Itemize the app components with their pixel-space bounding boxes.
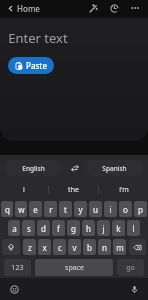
button[interactable]: History — [106, 0, 122, 16]
button[interactable]: Spanish — [87, 160, 142, 176]
staticText: i — [23, 185, 25, 195]
staticText: e — [33, 204, 38, 215]
button[interactable]: i — [0, 181, 48, 198]
staticText: a — [12, 223, 17, 234]
staticText: s — [27, 223, 31, 234]
staticText: go — [126, 263, 135, 273]
button[interactable]: Backspace — [129, 239, 146, 255]
button[interactable]: y — [74, 201, 87, 217]
staticText: p — [138, 204, 143, 215]
button[interactable]: More options — [127, 0, 143, 16]
staticText: Enter text — [8, 29, 68, 47]
button[interactable]: 123 — [4, 259, 31, 276]
button[interactable]: l — [127, 220, 140, 236]
button[interactable]: z — [23, 239, 36, 255]
staticText: f — [57, 223, 60, 234]
button[interactable]: s — [22, 220, 35, 236]
staticText: English — [22, 164, 45, 173]
button[interactable]: b — [83, 239, 96, 255]
staticText: v — [72, 242, 77, 253]
button[interactable]: v — [68, 239, 81, 255]
button[interactable]: a — [8, 220, 20, 236]
staticText: Home — [17, 3, 40, 14]
button[interactable]: u — [89, 201, 102, 217]
button[interactable]: w — [15, 201, 27, 217]
button[interactable]: t — [59, 201, 72, 217]
button[interactable]: q — [1, 201, 13, 217]
button[interactable]: Emoji — [6, 281, 22, 297]
button[interactable]: k — [112, 220, 125, 236]
staticText: x — [42, 242, 47, 253]
staticText: j — [102, 223, 105, 234]
staticText: l — [132, 223, 135, 234]
button[interactable]: Shift — [2, 239, 20, 255]
staticText: n — [102, 242, 107, 253]
staticText: t — [64, 204, 67, 215]
staticText: h — [86, 223, 91, 234]
staticText: i'm — [119, 185, 129, 195]
button[interactable]: e — [29, 201, 42, 217]
button[interactable]: h — [82, 220, 95, 236]
button[interactable]: o — [119, 201, 132, 217]
button[interactable]: English — [6, 160, 61, 176]
button[interactable]: i — [104, 201, 117, 217]
button[interactable]: d — [37, 220, 50, 236]
button[interactable]: c — [53, 239, 66, 255]
button[interactable]: p — [134, 201, 147, 217]
staticText: Paste — [26, 60, 47, 71]
staticText: b — [87, 242, 92, 253]
button[interactable]: g — [67, 220, 80, 236]
staticText: m — [116, 242, 124, 253]
staticText: 123 — [11, 263, 24, 273]
button[interactable]: Swap languages — [61, 159, 87, 177]
staticText: g — [71, 223, 76, 234]
staticText: r — [49, 204, 53, 215]
staticText: Spanish — [102, 164, 127, 173]
staticText: k — [116, 223, 121, 234]
button[interactable]: f — [52, 220, 65, 236]
button[interactable]: Voice input — [126, 281, 142, 297]
button[interactable]: Home — [5, 1, 42, 16]
button[interactable]: go — [117, 259, 144, 276]
staticText: z — [28, 242, 32, 253]
button[interactable]: Magic — [85, 0, 101, 16]
staticText: the — [68, 185, 79, 195]
button[interactable]: i'm — [99, 181, 148, 198]
button[interactable]: r — [44, 201, 57, 217]
button[interactable]: m — [113, 239, 126, 255]
staticText: q — [5, 204, 10, 215]
staticText: y — [78, 204, 83, 215]
staticText: o — [123, 204, 128, 215]
button[interactable]: the — [49, 181, 98, 198]
staticText: w — [18, 204, 25, 215]
button[interactable]: Enter text — [8, 28, 148, 48]
staticText: u — [93, 204, 98, 215]
staticText: d — [41, 223, 46, 234]
staticText: space — [65, 263, 84, 273]
staticText: c — [58, 242, 62, 253]
button[interactable]: Paste — [8, 57, 54, 74]
button[interactable]: space — [35, 259, 113, 276]
button[interactable]: x — [38, 239, 51, 255]
button[interactable]: j — [97, 220, 110, 236]
button[interactable]: n — [98, 239, 111, 255]
staticText: i — [109, 204, 112, 215]
